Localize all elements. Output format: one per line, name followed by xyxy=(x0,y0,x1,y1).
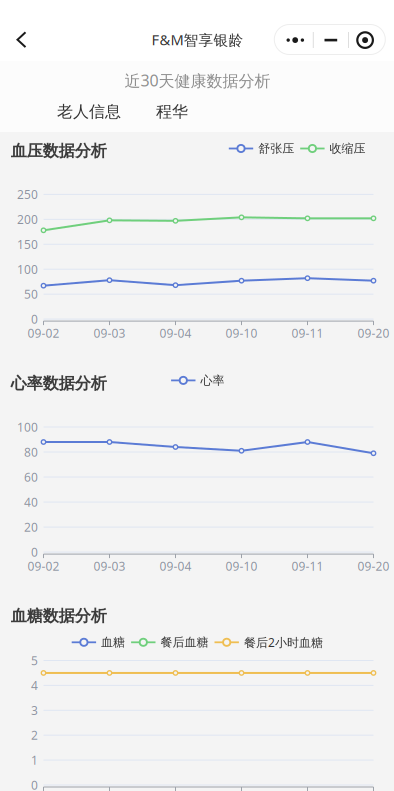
staticText: 5 xyxy=(31,652,38,668)
staticText: 09-20 xyxy=(357,325,389,341)
button[interactable]: More options xyxy=(274,24,385,54)
staticText: 100 xyxy=(17,419,38,435)
staticText: 250 xyxy=(17,186,38,202)
staticText: 09-02 xyxy=(27,558,59,574)
staticText: 50 xyxy=(24,286,38,302)
staticText: 心率数据分析 xyxy=(11,373,107,393)
staticText: 近30天健康数据分析 xyxy=(124,70,270,91)
staticText: 餐后血糖 xyxy=(160,635,208,650)
staticText: 09-02 xyxy=(27,325,59,341)
staticText: 收缩压 xyxy=(330,141,366,156)
staticText: 09-10 xyxy=(225,558,257,574)
staticText: 老人信息 xyxy=(57,102,121,122)
staticText: 2 xyxy=(31,727,38,743)
staticText: 餐后2小时血糖 xyxy=(244,634,323,650)
staticText: 20 xyxy=(24,519,38,535)
staticText: 0 xyxy=(31,777,38,791)
staticText: 80 xyxy=(24,444,38,460)
staticText: 60 xyxy=(24,469,38,485)
staticText: 4 xyxy=(31,677,38,693)
staticText: 09-20 xyxy=(357,558,389,574)
staticText: 程华 xyxy=(156,102,188,122)
staticText: 09-03 xyxy=(93,558,125,574)
staticText: 09-11 xyxy=(291,325,323,341)
staticText: 0 xyxy=(31,544,38,560)
staticText: 09-11 xyxy=(291,558,323,574)
staticText: 09-03 xyxy=(93,325,125,341)
staticText: 09-04 xyxy=(159,558,191,574)
staticText: 0 xyxy=(31,311,38,327)
staticText: 血压数据分析 xyxy=(11,141,107,161)
staticText: 09-04 xyxy=(159,325,191,341)
staticText: 血糖数据分析 xyxy=(11,606,107,626)
button[interactable]: Back xyxy=(4,18,38,61)
staticText: 舒张压 xyxy=(258,141,294,156)
staticText: 血糖 xyxy=(101,635,125,650)
staticText: 100 xyxy=(17,261,38,277)
staticText: 40 xyxy=(24,494,38,510)
staticText: 3 xyxy=(31,702,38,718)
staticText: F&M智享银龄 xyxy=(152,30,244,49)
staticText: 1 xyxy=(31,752,38,768)
staticText: 09-10 xyxy=(225,325,257,341)
staticText: 200 xyxy=(17,211,38,227)
staticText: 150 xyxy=(17,236,38,252)
staticText: 心率 xyxy=(200,373,224,388)
